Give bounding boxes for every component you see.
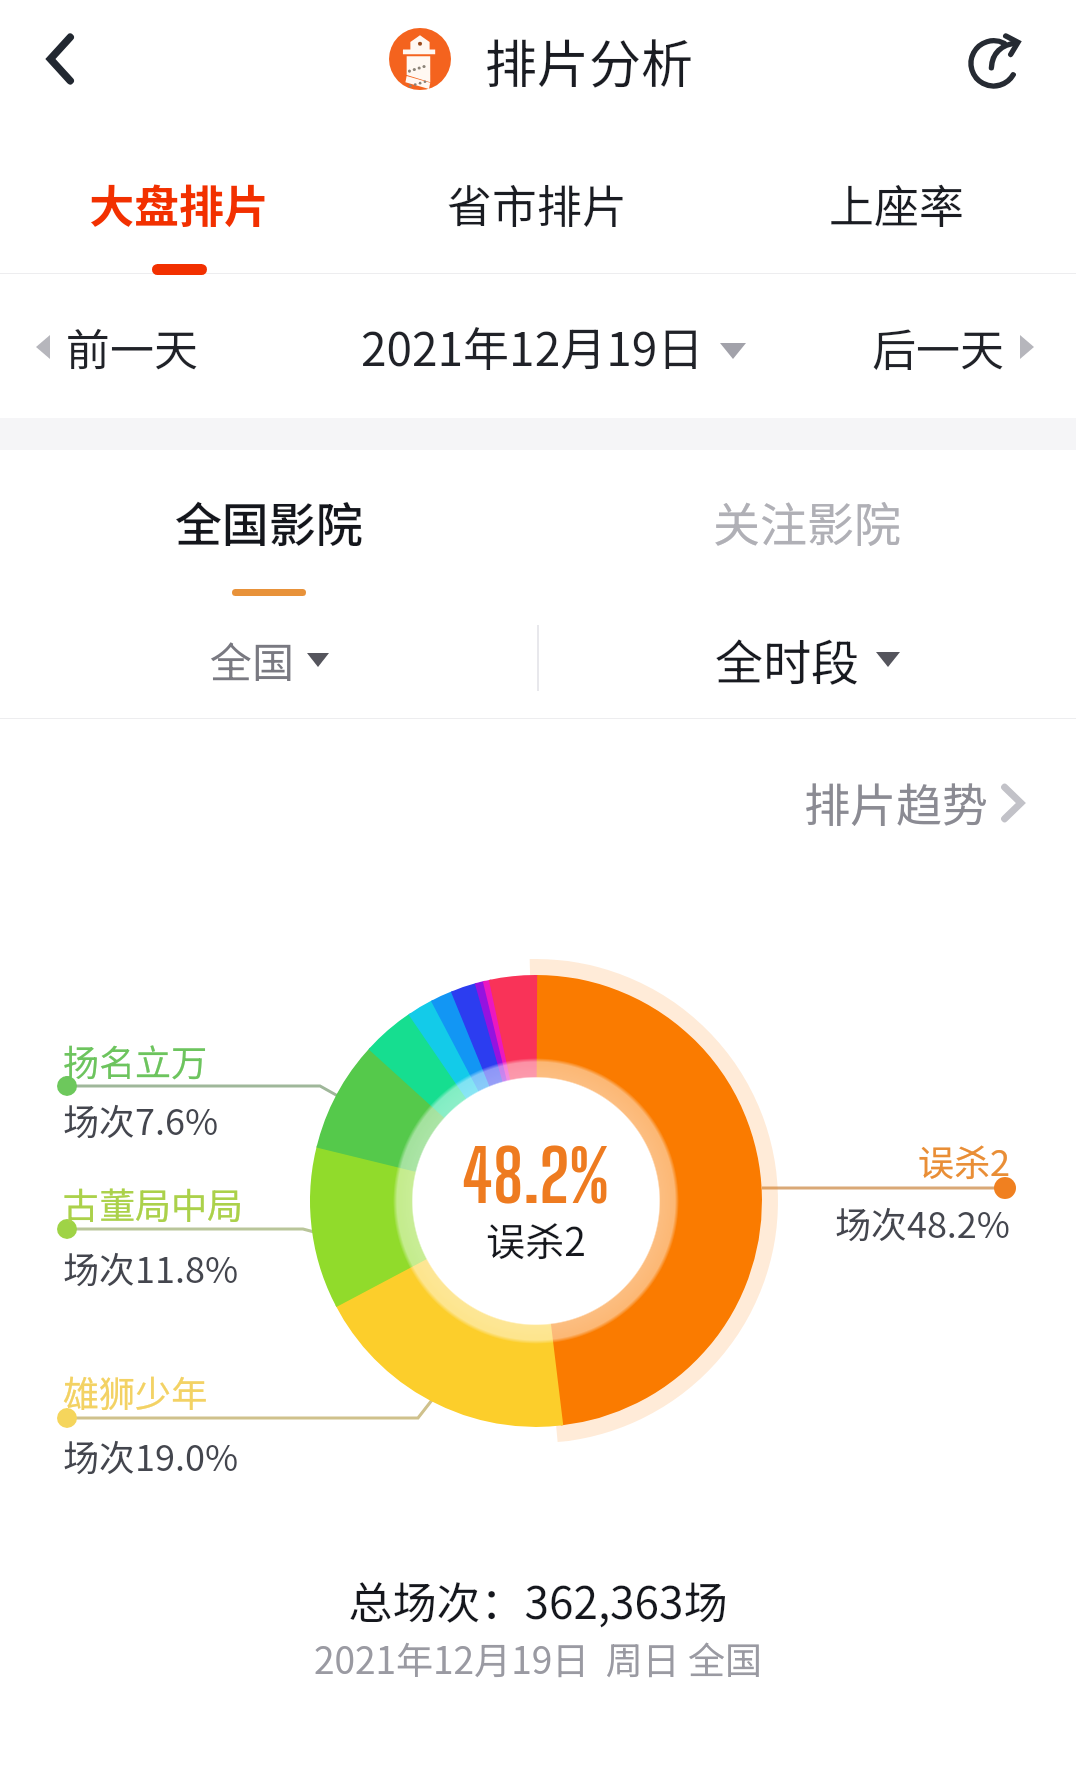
- button[interactable]: Share: [955, 18, 1039, 102]
- staticText: 后一天: [872, 315, 1004, 379]
- staticText: 上座率: [829, 171, 965, 236]
- staticText: 全国影院: [175, 487, 363, 555]
- button[interactable]: 全时段: [538, 600, 1076, 718]
- staticText: 场次19.0%: [63, 1429, 239, 1481]
- staticText: 排片分析: [485, 23, 694, 98]
- staticText: 误杀2: [336, 1211, 736, 1267]
- button[interactable]: 省市排片: [358, 140, 717, 276]
- staticText: 省市排片: [447, 171, 628, 236]
- staticText: 48.2%: [336, 1134, 736, 1218]
- button[interactable]: 大盘排片: [0, 140, 358, 276]
- staticText: 场次7.6%: [63, 1093, 219, 1145]
- staticText: 前一天: [66, 315, 198, 379]
- staticText: 全国: [210, 629, 295, 690]
- staticText: 古董局中局: [63, 1177, 244, 1229]
- button[interactable]: 全国: [0, 600, 538, 718]
- staticText: 2021年12月19日 周日 全国: [0, 1631, 1076, 1685]
- staticText: 场次11.8%: [63, 1241, 239, 1293]
- staticText: 2021年12月19日: [361, 313, 704, 380]
- button[interactable]: 后一天: [862, 293, 1044, 401]
- staticText: 扬名立万: [63, 1034, 208, 1086]
- button[interactable]: 2021年12月19日: [355, 291, 752, 402]
- button[interactable]: 排片趋势: [790, 755, 1038, 850]
- staticText: 关注影院: [713, 487, 901, 555]
- staticText: 全时段: [715, 624, 860, 694]
- button[interactable]: Back: [18, 17, 102, 101]
- staticText: 排片趋势: [804, 769, 988, 836]
- staticText: 误杀2: [610, 1134, 1010, 1186]
- button[interactable]: 全国影院: [0, 450, 538, 600]
- staticText: 大盘排片: [89, 171, 270, 236]
- staticText: 总场次：362,363场: [0, 1568, 1076, 1632]
- button[interactable]: 前一天: [26, 293, 208, 401]
- staticText: 场次48.2%: [610, 1196, 1010, 1248]
- button[interactable]: 上座率: [717, 140, 1076, 276]
- button[interactable]: 关注影院: [538, 450, 1076, 600]
- staticText: 雄狮少年: [63, 1365, 208, 1417]
